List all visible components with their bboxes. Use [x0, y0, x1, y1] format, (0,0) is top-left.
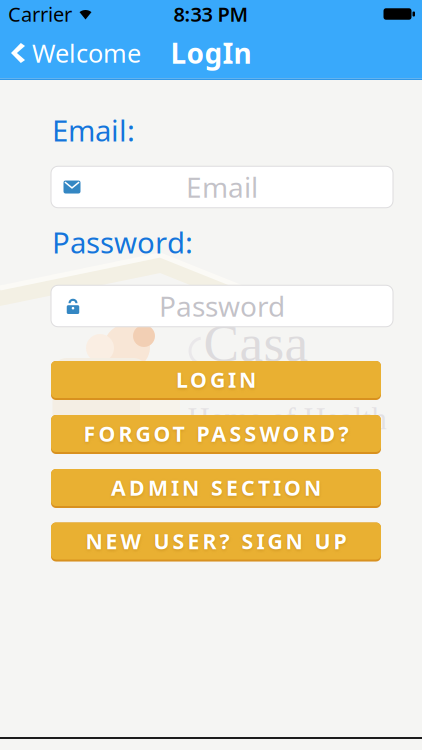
staticText: 8:33 PM	[173, 1, 248, 27]
staticText: Password:	[52, 222, 193, 261]
staticText: FORGOT PASSWORD?	[83, 419, 348, 448]
staticText: Home of Health	[187, 402, 386, 436]
staticText: Welcome	[32, 36, 141, 70]
button[interactable]: FORGOT PASSWORD?	[51, 415, 381, 454]
staticText: LOGIN	[176, 365, 256, 394]
button[interactable]: Password	[51, 285, 393, 327]
button[interactable]: NEW USER? SIGN UP	[51, 522, 381, 561]
staticText: LogIn	[170, 34, 251, 72]
button[interactable]: Back	[11, 36, 141, 70]
staticText: Carrier	[8, 1, 72, 27]
staticText: ADMIN SECTION	[111, 473, 321, 502]
staticText: NEW USER? SIGN UP	[85, 527, 346, 555]
staticText: Email:	[52, 110, 135, 149]
staticText: Password	[159, 287, 285, 325]
staticText: Casa	[203, 313, 308, 373]
button[interactable]: LOGIN	[51, 361, 381, 400]
button[interactable]: ADMIN SECTION	[51, 469, 381, 508]
staticText: Email	[186, 168, 258, 206]
button[interactable]: Email	[51, 166, 393, 208]
